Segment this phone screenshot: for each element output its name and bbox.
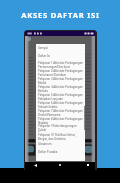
button[interactable]: Back <box>34 164 37 167</box>
staticText: Pelajaran 2 Aktivitas Perdagangan Pertuk… <box>38 69 83 76</box>
staticText: Pelajaran 3 Aktivitas Perdagangan Modal <box>38 77 83 84</box>
staticText: Pelajaran 1 Aktivitas Perdagangan Perseo… <box>38 61 83 68</box>
button[interactable]: Pelajaran 2 Aktivitas Perdagangan Pertuk… <box>36 68 85 76</box>
staticText: Daftar Pustaka <box>38 150 58 154</box>
button[interactable]: Pelajaran 9 Keberlangsungan Tubuh Remaja <box>36 124 85 132</box>
button[interactable]: Pelajaran 6 Aktivitas Perdagangan Sebuah… <box>36 100 85 108</box>
staticText: Pelajaran 4 Aktivitas Perdagangan Berkal… <box>38 85 83 92</box>
button[interactable]: Daftar Isi <box>36 52 85 60</box>
staticText: Glosarium <box>38 142 52 146</box>
button[interactable]: Pelajaran 4 Aktivitas Perdagangan Berkal… <box>36 84 85 92</box>
button[interactable]: AKSES DAFTAR ISI <box>0 0 120 30</box>
button[interactable]: Pelajaran 10 Publikasi Sehat, Bergizi, d… <box>36 132 85 140</box>
staticText: Pelajaran 5 Aktivitas Perdagangan Kebija… <box>38 93 83 100</box>
staticText: Daftar Isi <box>38 54 51 58</box>
button[interactable]: Sampul <box>36 44 85 52</box>
staticText: Pelajaran 7 Aktivitas Perdagangan Direkt… <box>38 109 83 116</box>
staticText: Pelajaran 6 Aktivitas Perdagangan Sebuah… <box>38 101 83 108</box>
button[interactable]: Pelajaran 3 Aktivitas Perdagangan Modal <box>36 76 85 84</box>
staticText: Pelajaran 9 Keberlangsungan Tubuh Remaja <box>38 124 83 132</box>
button[interactable]: Glosarium <box>36 140 85 148</box>
staticText: Pelajaran 8 Aktivitas Perdagangan Nabati… <box>38 117 83 124</box>
button[interactable]: Pelajaran 7 Aktivitas Perdagangan Direkt… <box>36 108 85 116</box>
staticText: Pelajaran 10 Publikasi Sehat, Bergizi, d… <box>38 133 76 140</box>
button[interactable]: Pelajaran 1 Aktivitas Perdagangan Perseo… <box>36 60 85 68</box>
button[interactable]: Pelajaran 5 Aktivitas Perdagangan Kebija… <box>36 92 85 100</box>
staticText: Sampul <box>38 46 48 50</box>
button[interactable]: Daftar Pustaka <box>36 148 85 156</box>
button[interactable]: Pelajaran 8 Aktivitas Perdagangan Nabati… <box>36 116 85 124</box>
staticText: AKSES DAFTAR ISI <box>21 10 100 20</box>
